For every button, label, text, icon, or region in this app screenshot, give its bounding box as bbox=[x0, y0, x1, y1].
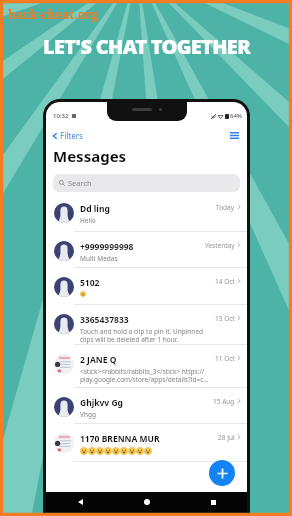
staticText: Hello bbox=[80, 216, 96, 225]
staticText: Yesterday bbox=[205, 241, 235, 250]
staticText: Search bbox=[68, 178, 92, 188]
staticText: Dd ling bbox=[80, 203, 110, 215]
button[interactable]: 5102 bbox=[46, 268, 247, 305]
button[interactable]: Filters bbox=[50, 129, 84, 142]
staticText: 3365437833 bbox=[80, 314, 129, 326]
button[interactable]: Dd ling bbox=[46, 194, 247, 232]
button[interactable]: Back bbox=[74, 496, 86, 508]
staticText: Messages bbox=[53, 146, 127, 166]
staticText: Ghjkvv Gg bbox=[80, 397, 123, 409]
button[interactable]: Ghjkvv Gg bbox=[46, 388, 247, 424]
button[interactable]: Menu bbox=[228, 129, 241, 142]
staticText: 1170 BRENNA MUR bbox=[80, 433, 160, 445]
staticText: 13 Oct bbox=[215, 314, 235, 323]
button[interactable]: 2 JANE Q bbox=[46, 345, 247, 388]
staticText: 14 Oct bbox=[215, 277, 235, 286]
staticText: Multi Medas bbox=[80, 254, 118, 263]
staticText: 15 Aug bbox=[213, 397, 235, 406]
staticText: 11 Oct bbox=[215, 354, 235, 363]
staticText: Vhgg bbox=[80, 410, 96, 419]
staticText: hack-cheat.org bbox=[8, 6, 99, 22]
button[interactable]: Home bbox=[141, 496, 153, 508]
button[interactable]: Recents bbox=[207, 496, 219, 508]
button[interactable]: +9999999998 bbox=[46, 232, 247, 268]
staticText: 2 JANE Q bbox=[80, 354, 117, 366]
button[interactable]: Search bbox=[53, 174, 240, 192]
staticText: Filters bbox=[60, 130, 83, 141]
staticText: +9999999998 bbox=[80, 241, 134, 253]
staticText: 5102 bbox=[80, 277, 100, 289]
staticText: 64% bbox=[230, 112, 242, 120]
staticText: 10:32 bbox=[53, 112, 69, 120]
button[interactable]: 3365437833 bbox=[46, 305, 247, 345]
button[interactable]: New message bbox=[209, 460, 235, 486]
staticText: Today bbox=[216, 203, 235, 212]
staticText: <stick><rabbits/rabbits_3</stick> https:… bbox=[80, 367, 212, 384]
button[interactable]: 1170 BRENNA MUR bbox=[46, 424, 247, 462]
staticText: Touch and hold a clip to pin it. Unpinne… bbox=[80, 327, 212, 344]
staticText: 28 Jul bbox=[218, 433, 235, 442]
staticText: LET'S CHAT TOGETHER bbox=[43, 33, 250, 60]
